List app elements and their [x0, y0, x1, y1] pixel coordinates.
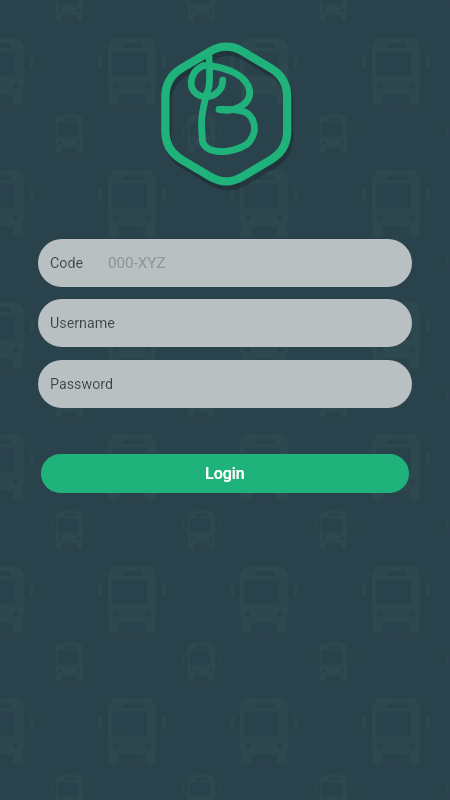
staticText: Password [50, 376, 114, 393]
staticText: 000-XYZ [108, 254, 166, 272]
button[interactable]: Login [41, 454, 409, 493]
button[interactable]: Code [38, 239, 412, 287]
button[interactable]: Username [38, 299, 412, 347]
staticText: Login [205, 464, 245, 483]
staticText: Code [50, 255, 84, 272]
button[interactable]: Password [38, 360, 412, 408]
staticText: Username [50, 315, 115, 332]
